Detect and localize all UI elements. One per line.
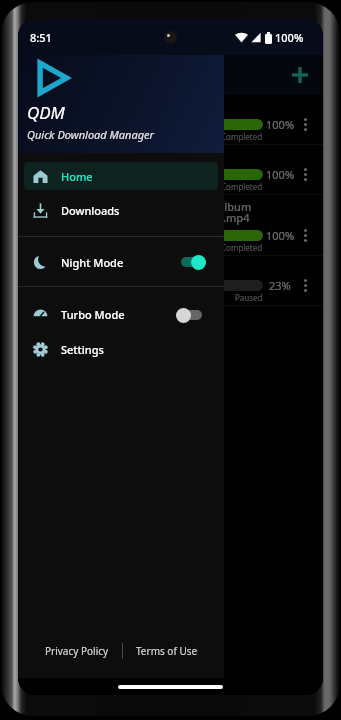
button[interactable]: Project-backup-archive.zip — [18, 256, 323, 305]
staticText: 8:51 — [30, 30, 52, 45]
button[interactable]: Privacy Policy — [41, 640, 122, 662]
staticText: Completed — [221, 131, 263, 142]
staticText: Quick Download Manager — [27, 127, 154, 142]
staticText: Home — [61, 169, 93, 184]
button[interactable]: Toggle off — [176, 306, 206, 324]
staticText: Completed — [221, 181, 263, 192]
staticText: 100% — [275, 30, 304, 45]
button[interactable]: Holiday_beach_video.mp4 — [18, 145, 323, 194]
button[interactable]: Downloads — [24, 196, 218, 225]
button[interactable]: Ubuntu-22.04-desktop-amd64.iso — [18, 95, 323, 144]
button[interactable]: Greatest hits 2024 summer collectn album… — [18, 195, 323, 255]
button[interactable]: Night Mode — [24, 249, 218, 275]
staticText: Downloads — [61, 203, 120, 218]
button[interactable]: More options — [295, 165, 315, 183]
button[interactable]: Toggle on — [176, 253, 206, 271]
staticText: Holiday_beach_video.mp4 — [29, 149, 166, 164]
button[interactable]: More options — [295, 226, 315, 244]
staticText: Completed — [221, 242, 263, 253]
button[interactable]: More options — [295, 276, 315, 294]
button[interactable]: Settings — [24, 336, 218, 363]
button[interactable]: Terms of Use — [123, 640, 202, 662]
staticText: Night Mode — [61, 255, 124, 270]
staticText: Terms of Use — [136, 644, 198, 658]
staticText: 100% — [266, 117, 295, 132]
staticText: Greatest hits 2024 summer collectn album… — [29, 199, 252, 225]
button[interactable]: More options — [295, 115, 315, 133]
button[interactable]: Home — [24, 162, 218, 190]
staticText: Ubuntu-22.04-desktop-amd64.iso — [29, 99, 205, 114]
staticText: Paused — [235, 292, 263, 303]
staticText: QDM — [27, 101, 65, 124]
staticText: Turbo Mode — [61, 307, 125, 322]
button[interactable]: Add download — [283, 58, 317, 92]
staticText: Settings — [61, 342, 104, 357]
staticText: Project-backup-archive.zip — [29, 260, 168, 275]
staticText: Privacy Policy — [45, 644, 109, 658]
staticText: 23% — [269, 278, 291, 293]
staticText: 100% — [266, 228, 295, 243]
staticText: 100% — [266, 167, 295, 182]
button[interactable]: Turbo Mode — [24, 301, 218, 328]
